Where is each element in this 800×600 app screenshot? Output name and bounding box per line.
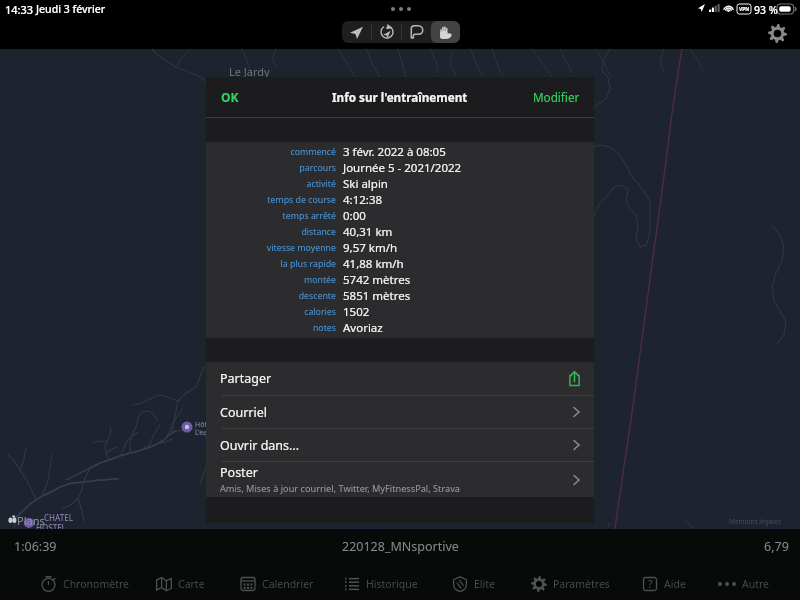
button[interactable]: Ouvrir dans... (206, 429, 594, 461)
staticText: Amis, Mises à jour courriel, Twitter, My… (220, 482, 461, 495)
staticText: commencé (290, 146, 336, 158)
button[interactable]: Partager (206, 362, 594, 395)
staticText: 93 % (754, 3, 778, 17)
button[interactable]: Draw (402, 21, 431, 43)
button[interactable]: Calendrier (230, 567, 324, 600)
staticText: Modifier (533, 89, 580, 105)
button[interactable]: Locate (342, 21, 371, 43)
staticText: Courriel (220, 404, 268, 421)
staticText: Ouvrir dans... (220, 437, 300, 454)
staticText: Chronomètre (63, 577, 130, 591)
button[interactable]: ? (632, 567, 696, 600)
staticText: Jeudi 3 février (36, 2, 106, 16)
staticText: 5742 mètres (343, 272, 411, 288)
staticText: Hôtel (195, 420, 213, 430)
staticText: vitesse moyenne (266, 242, 336, 254)
button[interactable]: Poster (206, 462, 594, 497)
staticText: ? (648, 577, 653, 591)
staticText: 40,31 km (343, 224, 393, 240)
staticText: Elite (474, 577, 495, 591)
button[interactable]: Settings (766, 22, 788, 44)
staticText: L'eau (195, 428, 212, 438)
staticText: Plans (17, 513, 45, 528)
staticText: 220128_MNsportive (342, 538, 459, 555)
staticText: activité (306, 178, 336, 190)
staticText: Partager (220, 370, 272, 387)
staticText: Ski alpin (343, 176, 388, 192)
staticText: 9,57 km/h (343, 240, 398, 256)
staticText: calories (304, 306, 336, 318)
staticText: 14:33 (5, 2, 34, 17)
staticText: OK (221, 89, 239, 105)
staticText: Avoriaz (343, 320, 383, 336)
staticText: Calendrier (262, 577, 314, 591)
button[interactable]: Compass (372, 21, 401, 43)
staticText: Mentions légales (729, 517, 781, 526)
button[interactable]: Pan (431, 21, 460, 43)
staticText: Aide (664, 577, 686, 591)
staticText: Info sur l'entraînement (332, 89, 468, 105)
staticText: 6,79 (764, 538, 789, 555)
staticText: 5851 mètres (343, 288, 411, 304)
button[interactable]: Chronomètre (30, 567, 140, 600)
staticText: HOSTEL (36, 522, 66, 533)
staticText: parcours (299, 162, 336, 174)
staticText: Le Jardy (229, 64, 270, 79)
staticText: 0:00 (343, 208, 366, 224)
staticText: montée (303, 274, 336, 286)
staticText: 1:06:39 (14, 538, 57, 555)
staticText: Poster (220, 464, 258, 481)
staticText: Journée 5 - 2021/2022 (343, 160, 462, 176)
staticText: Paramètres (553, 577, 610, 591)
staticText: 1502 (343, 304, 370, 320)
staticText: Historique (366, 577, 418, 591)
button[interactable]: Historique (334, 567, 428, 600)
button[interactable]: Paramètres (521, 567, 620, 600)
staticText: 41,88 km/h (343, 256, 404, 272)
staticText: notes (312, 322, 336, 334)
button[interactable]: OK (221, 89, 239, 105)
button[interactable]: Carte (146, 567, 215, 600)
staticText: distance (301, 226, 336, 238)
button[interactable]: Elite (442, 567, 505, 600)
staticText: 3 févr. 2022 à 08:05 (343, 144, 446, 160)
staticText: Carte (178, 577, 205, 591)
staticText: descente (298, 290, 336, 302)
staticText: 4:12:38 (343, 192, 383, 208)
staticText: VPN (739, 6, 750, 13)
staticText: la plus rapide (280, 258, 336, 270)
staticText: Autre (742, 577, 770, 591)
staticText: temps arrêté (282, 210, 336, 222)
staticText: temps de course (267, 194, 336, 206)
button[interactable]: Modifier (533, 89, 580, 105)
button[interactable]: Courriel (206, 396, 594, 428)
button[interactable]: Autre (708, 567, 780, 600)
staticText: CHATEL (44, 512, 73, 523)
